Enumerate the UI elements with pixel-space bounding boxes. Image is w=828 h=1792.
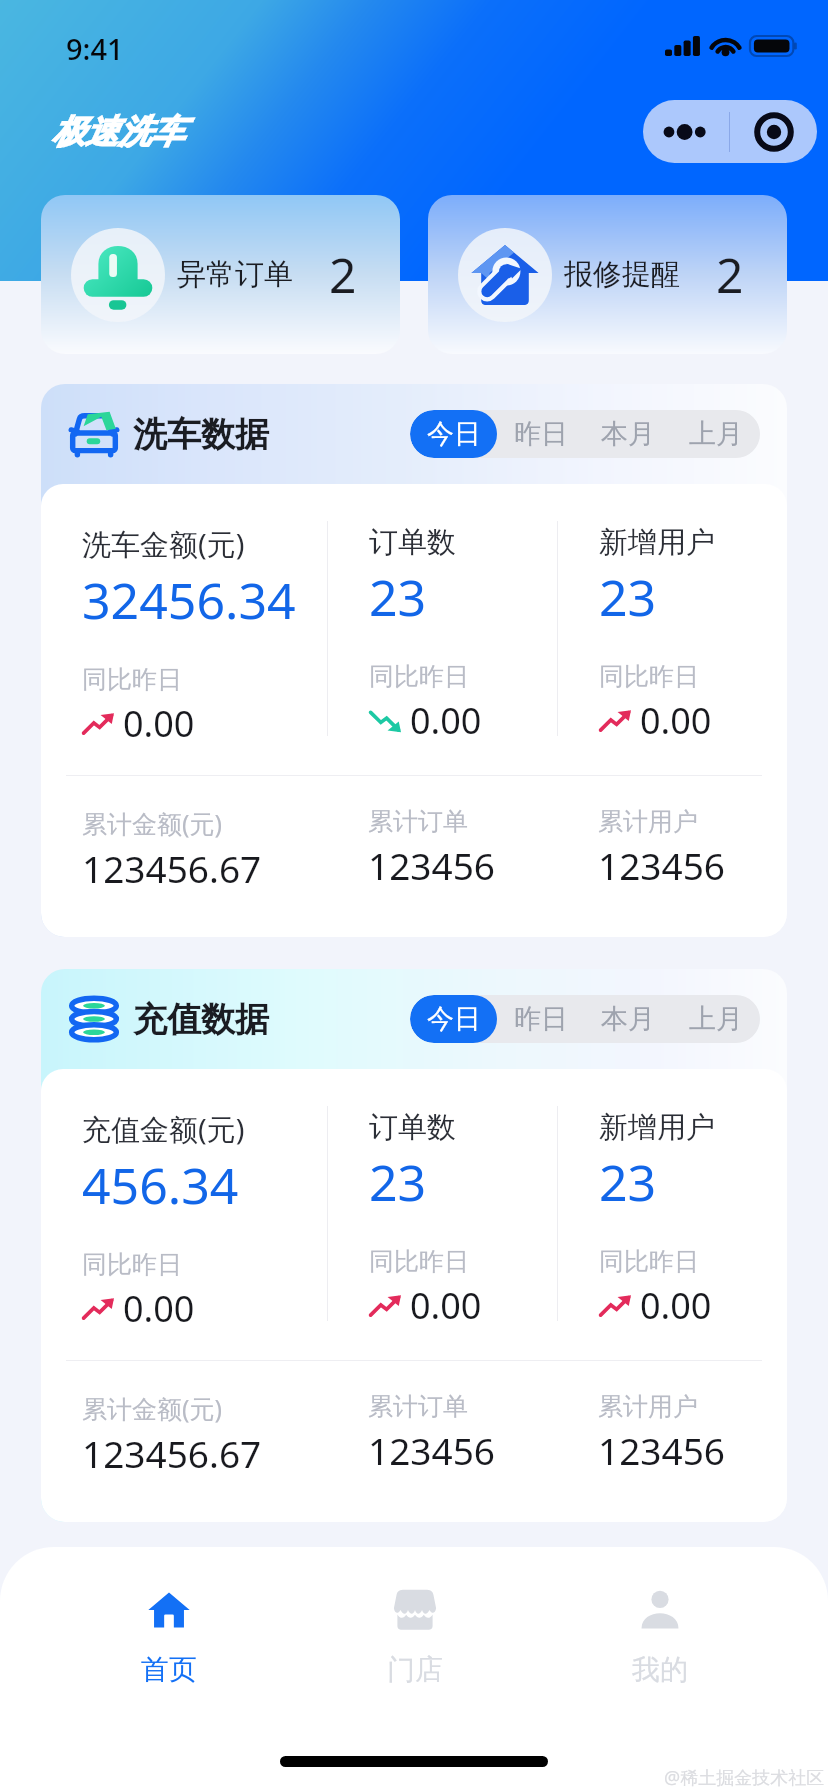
- staticText: 洗车数据: [133, 413, 269, 456]
- staticText: 23: [369, 1148, 427, 1216]
- staticText: 累计金额(元): [82, 1391, 223, 1425]
- staticText: 同比昨日: [82, 664, 182, 695]
- staticText: 0.00: [123, 699, 195, 748]
- staticText: 门店: [387, 1652, 443, 1687]
- button[interactable]: 上月: [672, 995, 760, 1043]
- staticText: 极速洗车: [52, 111, 184, 153]
- button[interactable]: 我的: [537, 1588, 782, 1687]
- staticText: 首页: [141, 1652, 197, 1687]
- button[interactable]: 昨日: [497, 410, 584, 458]
- staticText: 0.00: [640, 1281, 712, 1330]
- staticText: 充值金额(元): [82, 1109, 245, 1149]
- staticText: 123456.67: [82, 1428, 262, 1478]
- button[interactable]: 今日: [410, 995, 497, 1043]
- staticText: 0.00: [410, 696, 482, 745]
- staticText: 同比昨日: [82, 1249, 182, 1280]
- staticText: 123456: [368, 840, 495, 890]
- staticText: 2: [329, 242, 357, 307]
- staticText: 0.00: [410, 1281, 482, 1330]
- staticText: 今日: [427, 1002, 481, 1036]
- button[interactable]: 异常订单: [41, 195, 400, 354]
- staticText: 23: [369, 563, 427, 631]
- staticText: 456.34: [82, 1151, 239, 1219]
- staticText: 我的: [632, 1652, 688, 1687]
- staticText: 本月: [601, 1002, 655, 1036]
- staticText: 今日: [427, 417, 481, 451]
- staticText: 9:41: [66, 29, 124, 68]
- staticText: 累计用户: [598, 1391, 698, 1422]
- staticText: 123456: [368, 1425, 495, 1475]
- staticText: 洗车金额(元): [82, 524, 245, 564]
- staticText: 同比昨日: [599, 661, 699, 692]
- button[interactable]: 本月: [584, 410, 672, 458]
- staticText: 新增用户: [599, 1109, 715, 1146]
- staticText: 0.00: [123, 1284, 195, 1333]
- staticText: 昨日: [514, 417, 568, 451]
- staticText: 累计订单: [368, 806, 468, 837]
- staticText: 充值数据: [133, 998, 269, 1041]
- staticText: 同比昨日: [599, 1246, 699, 1277]
- staticText: 23: [599, 1148, 657, 1216]
- staticText: 32456.34: [82, 566, 296, 634]
- button[interactable]: Menu and close: [643, 100, 817, 163]
- staticText: 0.00: [640, 696, 712, 745]
- staticText: 新增用户: [599, 524, 715, 561]
- staticText: 同比昨日: [369, 661, 469, 692]
- button[interactable]: 上月: [672, 410, 760, 458]
- staticText: 123456.67: [82, 843, 262, 893]
- staticText: 上月: [689, 1002, 743, 1036]
- button[interactable]: 门店: [292, 1588, 537, 1687]
- staticText: 报修提醒: [564, 256, 680, 293]
- staticText: 本月: [601, 417, 655, 451]
- button[interactable]: 报修提醒: [428, 195, 787, 354]
- button[interactable]: 昨日: [497, 995, 584, 1043]
- staticText: 订单数: [369, 524, 456, 561]
- button[interactable]: 首页: [46, 1588, 292, 1687]
- staticText: 累计金额(元): [82, 806, 223, 840]
- staticText: 订单数: [369, 1109, 456, 1146]
- staticText: 同比昨日: [369, 1246, 469, 1277]
- staticText: 昨日: [514, 1002, 568, 1036]
- staticText: 上月: [689, 417, 743, 451]
- button[interactable]: 本月: [584, 995, 672, 1043]
- staticText: 123456: [598, 840, 725, 890]
- staticText: 累计用户: [598, 806, 698, 837]
- staticText: @稀土掘金技术社区: [664, 1765, 825, 1790]
- staticText: 23: [599, 563, 657, 631]
- button[interactable]: 今日: [410, 410, 497, 458]
- staticText: 123456: [598, 1425, 725, 1475]
- staticText: 累计订单: [368, 1391, 468, 1422]
- staticText: 异常订单: [177, 256, 293, 293]
- staticText: 2: [716, 242, 744, 307]
